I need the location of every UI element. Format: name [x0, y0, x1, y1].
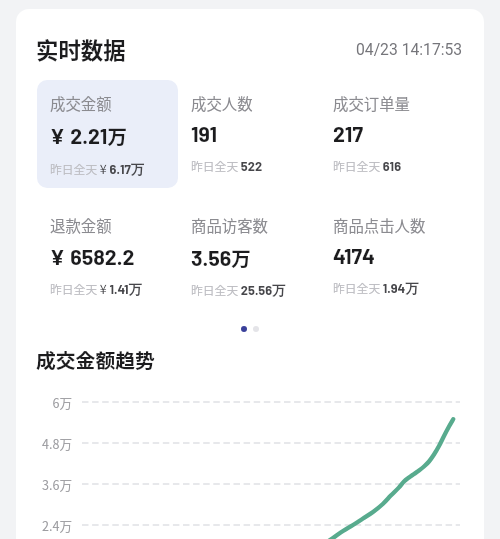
staticText: 3.6万 [16, 475, 72, 493]
staticText: 实时数据 [36, 33, 126, 65]
staticText: 成交金额 [50, 92, 112, 114]
button[interactable] [241, 326, 247, 332]
staticText: 2.4万 [16, 516, 72, 534]
staticText: 商品点击人数 [333, 214, 426, 236]
button[interactable]: 成交人数 [178, 80, 320, 185]
button[interactable]: 商品点击人数 [320, 202, 462, 307]
staticText: 04/23 14:17:53 [356, 40, 463, 58]
button[interactable]: 成交订单量 [320, 80, 462, 185]
staticText: 昨日全天 ¥ 6.17万 [50, 159, 144, 177]
staticText: 217 [333, 121, 364, 147]
staticText: ¥6582.2 [50, 243, 135, 269]
button[interactable]: 成交金额 [37, 80, 178, 188]
staticText: 6万 [16, 393, 72, 411]
staticText: 昨日全天 1.94万 [333, 279, 419, 296]
button[interactable]: 商品访客数 [178, 202, 320, 309]
staticText: 4.8万 [16, 434, 72, 452]
staticText: 191 [191, 121, 218, 147]
staticText: ¥2.21万 [50, 121, 127, 149]
staticText: 昨日全天 25.56万 [191, 281, 285, 298]
staticText: 4174 [333, 243, 376, 269]
button[interactable] [253, 326, 259, 332]
staticText: 成交人数 [191, 92, 253, 114]
staticText: 3.56万 [191, 243, 251, 271]
staticText: 商品访客数 [191, 214, 268, 236]
staticText: 昨日全天 616 [333, 157, 402, 174]
staticText: 成交金额趋势 [36, 345, 155, 374]
staticText: 成交订单量 [333, 92, 410, 114]
button[interactable]: 退款金额 [37, 202, 178, 308]
staticText: 昨日全天 ¥ 1.41万 [50, 279, 142, 297]
staticText: 退款金额 [50, 214, 112, 236]
staticText: 昨日全天 522 [191, 157, 263, 174]
